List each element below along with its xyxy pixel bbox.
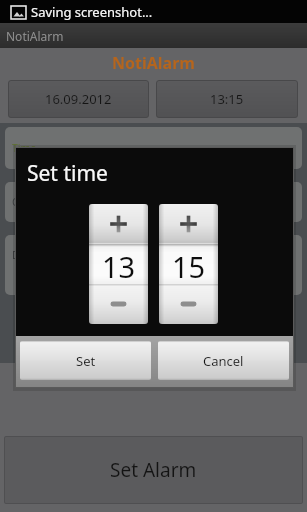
button[interactable]: Cancel xyxy=(158,341,289,380)
other: Screenshot saved xyxy=(11,6,26,19)
button[interactable]: 13:15 xyxy=(156,80,298,118)
staticText: 15 xyxy=(172,247,206,286)
staticText: Options xyxy=(12,195,52,209)
staticText: 13:15 xyxy=(210,90,244,108)
staticText: Set time xyxy=(27,159,108,188)
button[interactable]: 16.09.2012 xyxy=(8,80,149,118)
button[interactable]: Increment xyxy=(89,204,148,244)
staticText: Set xyxy=(76,352,96,370)
staticText: Details xyxy=(12,248,46,262)
staticText: NotiAlarm xyxy=(6,28,64,44)
button[interactable]: Decrement xyxy=(159,284,218,324)
button[interactable]: Increment xyxy=(159,204,218,244)
staticText: Cancel xyxy=(203,352,244,370)
button[interactable]: Details xyxy=(5,235,302,295)
staticText: NotiAlarm xyxy=(0,52,307,74)
button[interactable]: Time xyxy=(5,127,302,169)
button[interactable]: Decrement xyxy=(89,284,148,324)
staticText: Time xyxy=(12,141,37,155)
button[interactable]: Set Alarm xyxy=(4,436,303,504)
staticText: Set Alarm xyxy=(110,457,197,483)
staticText: 16.09.2012 xyxy=(45,90,112,108)
staticText: Saving screenshot... xyxy=(31,3,153,21)
button[interactable]: Options xyxy=(5,182,302,222)
staticText: 13 xyxy=(102,247,136,286)
button[interactable]: Set xyxy=(20,341,151,380)
